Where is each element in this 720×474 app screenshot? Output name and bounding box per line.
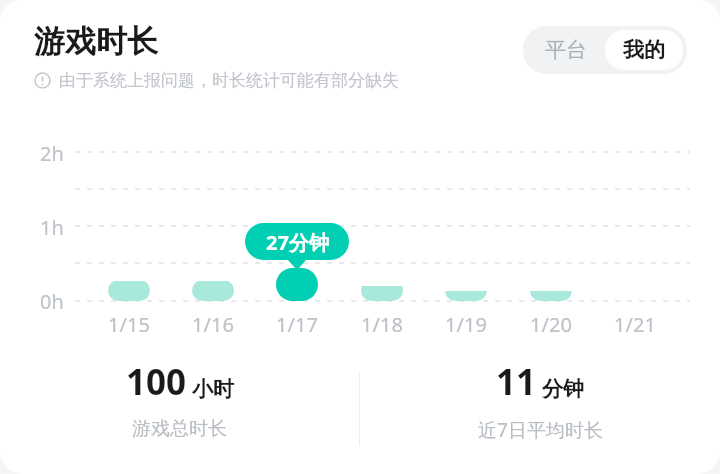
staticText: 小时 — [192, 376, 234, 402]
staticText: 1/21 — [614, 311, 656, 338]
staticText: 1/20 — [530, 311, 572, 338]
staticText: 由于系统上报问题，时长统计可能有部分缺失 — [59, 70, 399, 91]
button[interactable]: 11 — [360, 358, 720, 443]
staticText: 1/19 — [445, 311, 487, 338]
button[interactable]: 平台 — [527, 30, 605, 70]
staticText: 游戏时长 — [34, 22, 158, 61]
staticText: 1/15 — [108, 311, 150, 338]
staticText: 1/16 — [192, 311, 234, 338]
staticText: 11 — [496, 358, 537, 406]
staticText: 100 — [126, 358, 187, 406]
button[interactable]: 我的 — [605, 30, 683, 70]
staticText: 近7日平均时长 — [478, 417, 603, 443]
staticText: 1/18 — [361, 311, 403, 338]
staticText: 2h — [40, 140, 64, 167]
staticText: 27分钟 — [266, 229, 329, 256]
staticText: 1/17 — [276, 311, 318, 338]
staticText: 1h — [40, 214, 64, 241]
staticText: 平台 — [545, 37, 587, 63]
staticText: 0h — [40, 288, 64, 315]
staticText: 我的 — [623, 37, 665, 63]
button[interactable]: 100 — [0, 358, 359, 441]
staticText: 游戏总时长 — [132, 417, 227, 441]
staticText: 分钟 — [542, 376, 584, 402]
